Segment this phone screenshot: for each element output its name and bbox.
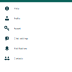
staticText: Contacts <box>14 57 23 60</box>
button[interactable]: Help <box>0 3 72 13</box>
button[interactable]: Account <box>0 23 72 33</box>
staticText: Profile <box>14 17 20 20</box>
button[interactable]: Notifications <box>0 43 72 53</box>
staticText: Help <box>14 7 19 10</box>
button[interactable]: Chat settings <box>0 33 72 43</box>
staticText: Chat settings <box>14 37 28 40</box>
staticText: Notifications <box>14 47 27 50</box>
button[interactable]: Profile <box>0 13 72 23</box>
button[interactable]: Contacts <box>0 53 72 63</box>
staticText: Account <box>14 27 21 30</box>
